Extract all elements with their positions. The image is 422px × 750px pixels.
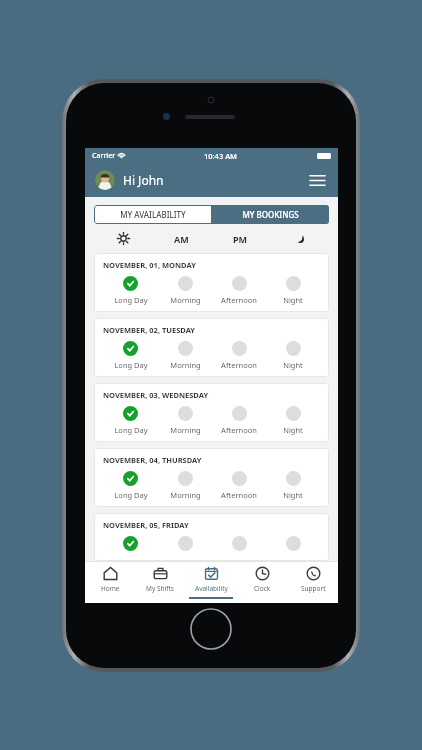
staticText: Morning bbox=[170, 490, 201, 500]
button[interactable]: NOVEMBER, 01, MONDAY bbox=[94, 253, 329, 312]
staticText: Long Day bbox=[114, 425, 148, 435]
button[interactable]: NOVEMBER, 02, TUESDAY bbox=[94, 318, 329, 377]
button[interactable]: Afternoon bbox=[212, 406, 266, 435]
button[interactable]: Night bbox=[266, 276, 320, 305]
staticText: Long Day bbox=[114, 295, 148, 305]
button[interactable]: Afternoon bbox=[212, 341, 266, 370]
button[interactable]: Morning bbox=[158, 406, 212, 435]
button[interactable]: My Shifts bbox=[135, 562, 185, 603]
button[interactable]: Availability bbox=[185, 562, 236, 603]
button[interactable]: Night bbox=[266, 536, 320, 554]
staticText: NOVEMBER, 01, MONDAY bbox=[103, 260, 196, 270]
button[interactable]: Afternoon bbox=[212, 536, 266, 554]
button[interactable]: Morning bbox=[158, 341, 212, 370]
button[interactable]: NOVEMBER, 03, WEDNESDAY bbox=[94, 383, 329, 442]
button[interactable]: MY BOOKINGS bbox=[211, 205, 329, 224]
button[interactable]: NOVEMBER, 04, THURSDAY bbox=[94, 448, 329, 507]
staticText: NOVEMBER, 02, TUESDAY bbox=[103, 325, 196, 335]
staticText: Clock bbox=[254, 584, 271, 593]
button[interactable]: Night bbox=[266, 341, 320, 370]
staticText: NOVEMBER, 03, WEDNESDAY bbox=[103, 390, 209, 400]
staticText: Night bbox=[283, 360, 303, 370]
staticText: AM bbox=[174, 233, 189, 245]
button[interactable]: Long Day bbox=[103, 341, 158, 370]
button[interactable]: Long Day bbox=[103, 276, 158, 305]
staticText: Night bbox=[283, 295, 303, 305]
button[interactable]: NOVEMBER, 05, FRIDAY bbox=[94, 513, 329, 561]
staticText: Night bbox=[283, 490, 303, 500]
staticText: Hi John bbox=[123, 172, 164, 188]
staticText: Support bbox=[301, 584, 326, 593]
staticText: MY AVAILABILITY bbox=[120, 209, 186, 220]
staticText: NOVEMBER, 04, THURSDAY bbox=[103, 455, 202, 465]
button[interactable]: Morning bbox=[158, 536, 212, 554]
staticText: Long Day bbox=[114, 490, 148, 500]
staticText: Afternoon bbox=[221, 490, 257, 500]
staticText: My Shifts bbox=[146, 584, 174, 593]
staticText: Night bbox=[283, 425, 303, 435]
button[interactable]: Morning bbox=[158, 471, 212, 500]
staticText: Afternoon bbox=[221, 360, 257, 370]
staticText: Home bbox=[101, 584, 120, 593]
staticText: Morning bbox=[170, 360, 201, 370]
button[interactable]: Menu bbox=[306, 169, 328, 191]
staticText: Afternoon bbox=[221, 295, 257, 305]
staticText: 10:43 AM bbox=[204, 151, 237, 161]
staticText: Carrier bbox=[92, 151, 116, 161]
button[interactable]: MY AVAILABILITY bbox=[94, 205, 211, 224]
button[interactable]: Home bbox=[85, 562, 135, 603]
button[interactable]: Long Day bbox=[103, 536, 158, 554]
button[interactable]: Night bbox=[266, 406, 320, 435]
staticText: Morning bbox=[170, 295, 201, 305]
button[interactable]: Morning bbox=[158, 276, 212, 305]
staticText: Morning bbox=[170, 425, 201, 435]
staticText: MY BOOKINGS bbox=[242, 209, 299, 220]
button[interactable]: Clock bbox=[236, 562, 287, 603]
staticText: Availability bbox=[195, 584, 228, 593]
button[interactable]: Long Day bbox=[103, 471, 158, 500]
button[interactable]: Afternoon bbox=[212, 276, 266, 305]
button[interactable]: Long Day bbox=[103, 406, 158, 435]
staticText: Long Day bbox=[114, 360, 148, 370]
staticText: PM bbox=[233, 233, 248, 245]
button[interactable]: Night bbox=[266, 471, 320, 500]
staticText: Afternoon bbox=[221, 425, 257, 435]
staticText: NOVEMBER, 05, FRIDAY bbox=[103, 520, 189, 530]
button[interactable]: Support bbox=[287, 562, 338, 603]
button[interactable]: Afternoon bbox=[212, 471, 266, 500]
